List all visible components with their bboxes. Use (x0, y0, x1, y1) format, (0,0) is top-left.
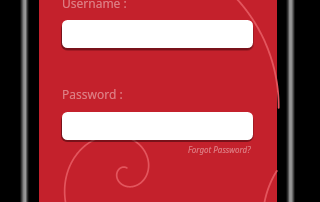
staticText: Password : (62, 86, 123, 102)
staticText: Forgot Password? (188, 144, 251, 155)
button[interactable]: Forgot Password? (188, 144, 251, 155)
staticText: Username : (62, 0, 127, 11)
button[interactable] (62, 112, 253, 140)
button[interactable] (62, 20, 253, 48)
